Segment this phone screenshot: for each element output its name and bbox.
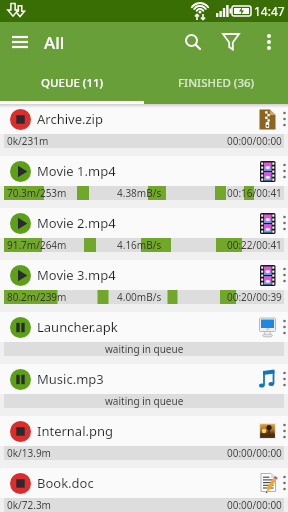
- button[interactable]: Movie 1.mp4: [0, 156, 288, 186]
- button[interactable]: [0, 22, 40, 62]
- button[interactable]: [212, 22, 250, 62]
- button[interactable]: FINISHED (36): [144, 62, 288, 104]
- staticText: Internal.png: [37, 422, 114, 440]
- button[interactable]: [10, 317, 31, 338]
- staticText: Launcher.apk: [37, 318, 118, 336]
- staticText: 70.3m/253m: [7, 186, 67, 200]
- staticText: Movie 3.mp4: [37, 266, 116, 284]
- staticText: 00:20/00:39: [227, 290, 282, 304]
- button[interactable]: [10, 473, 31, 494]
- button[interactable]: [10, 161, 31, 182]
- staticText: waiting in queue: [105, 342, 184, 356]
- button[interactable]: Launcher.apk: [0, 312, 288, 342]
- staticText: 00:00/00:00: [227, 446, 282, 460]
- staticText: 0k/231m: [7, 134, 49, 148]
- button[interactable]: Archive.zip: [0, 104, 288, 134]
- staticText: 00:16/00:41: [227, 186, 282, 200]
- staticText: Music.mp3: [37, 370, 104, 388]
- button[interactable]: Movie 3.mp4: [0, 260, 288, 290]
- staticText: FINISHED (36): [178, 75, 255, 91]
- staticText: All: [44, 31, 65, 54]
- staticText: Book.doc: [37, 474, 94, 492]
- staticText: QUEUE (11): [41, 75, 104, 91]
- button[interactable]: Movie 2.mp4: [0, 208, 288, 238]
- staticText: 4.16mB/s: [117, 238, 162, 252]
- button[interactable]: [174, 22, 212, 62]
- staticText: 0k/72.3m: [7, 498, 51, 512]
- staticText: Archive.zip: [37, 110, 103, 128]
- staticText: 00:00/00:00: [227, 134, 282, 148]
- button[interactable]: [10, 109, 31, 130]
- button[interactable]: QUEUE (11): [0, 62, 144, 104]
- staticText: Movie 2.mp4: [37, 214, 116, 232]
- staticText: 14:47: [254, 3, 285, 19]
- staticText: 00:00/00:00: [227, 498, 282, 512]
- staticText: 4.38mB/s: [117, 186, 162, 200]
- button[interactable]: [250, 22, 288, 62]
- staticText: Movie 1.mp4: [37, 162, 116, 180]
- staticText: waiting in queue: [105, 394, 184, 408]
- staticText: 00:22/00:41: [227, 238, 282, 252]
- staticText: 0k/13.9m: [7, 446, 51, 460]
- staticText: 4.00mB/s: [117, 290, 162, 304]
- button[interactable]: [10, 369, 31, 390]
- button[interactable]: Music.mp3: [0, 364, 288, 394]
- staticText: 91.7m/264m: [7, 238, 67, 252]
- button[interactable]: Book.doc: [0, 468, 288, 498]
- button[interactable]: Internal.png: [0, 416, 288, 446]
- staticText: 80.2m/239m: [7, 290, 67, 304]
- button[interactable]: [10, 421, 31, 442]
- button[interactable]: [10, 213, 31, 234]
- button[interactable]: [10, 265, 31, 286]
